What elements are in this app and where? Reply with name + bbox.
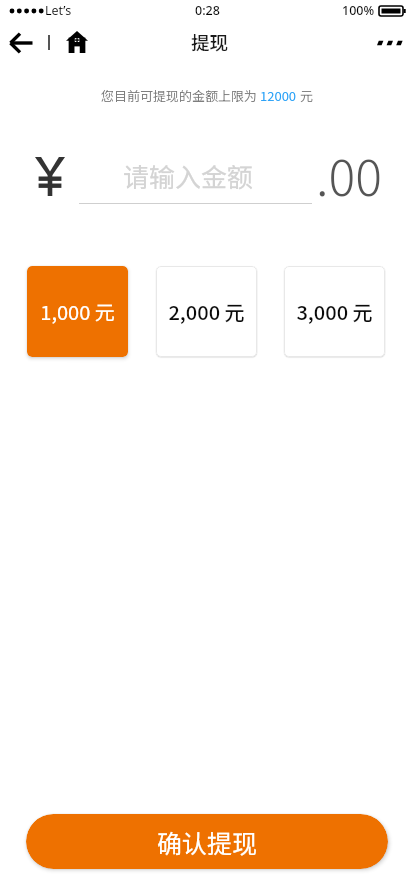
staticText: 100% (342, 2, 375, 19)
button[interactable]: 3,000 元 (284, 266, 385, 357)
staticText: 3,000 元 (296, 297, 373, 326)
button[interactable]: 确认提现 (26, 814, 388, 869)
staticText: Let’s (45, 2, 72, 19)
button[interactable]: 2,000 元 (156, 266, 257, 357)
staticText: 元 (297, 86, 313, 105)
staticText: 请输入金额 (123, 157, 254, 195)
staticText: .00 (316, 138, 382, 210)
staticText: 0:28 (195, 2, 220, 19)
staticText: 您目前可提现的金额上限为 (101, 86, 260, 105)
staticText: 12000 (260, 86, 297, 105)
button[interactable]: 请输入金额 (79, 152, 312, 204)
staticText: 确认提现 (157, 824, 258, 860)
button[interactable]: More options (371, 25, 411, 61)
staticText: 1,000 元 (40, 297, 115, 326)
button[interactable]: Home (57, 22, 96, 61)
button[interactable]: 1,000 元 (27, 266, 128, 357)
button[interactable]: Back (4, 26, 38, 60)
staticText: 提现 (191, 29, 229, 56)
staticText: 2,000 元 (168, 297, 245, 326)
